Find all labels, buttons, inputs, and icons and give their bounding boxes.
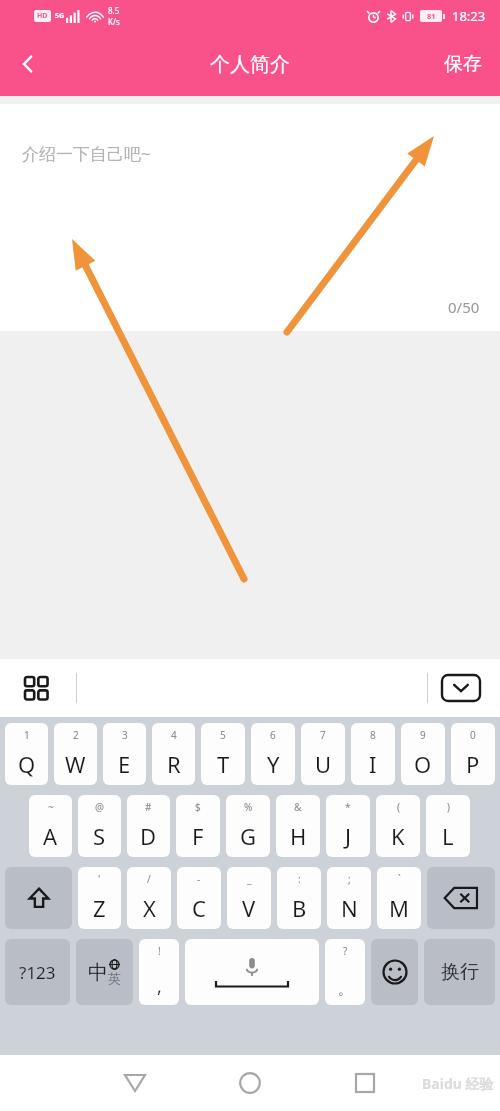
staticText: F xyxy=(192,821,204,851)
button[interactable]: 8 xyxy=(351,723,395,785)
staticText: 。 xyxy=(338,981,352,999)
button[interactable]: Keyboard panel xyxy=(14,666,58,710)
staticText: 4 xyxy=(171,728,177,742)
staticText: W xyxy=(65,749,86,779)
staticText: Baidu 经验 xyxy=(422,1074,494,1093)
button[interactable]: : xyxy=(277,867,321,929)
staticText: & xyxy=(294,800,302,814)
staticText: 7 xyxy=(320,728,326,742)
staticText: H xyxy=(290,821,307,851)
staticText: HD xyxy=(37,11,48,21)
button[interactable]: / xyxy=(127,867,171,929)
button[interactable]: 2 xyxy=(54,723,97,785)
button[interactable]: 7 xyxy=(301,723,345,785)
staticText: % xyxy=(244,800,253,814)
staticText: M xyxy=(389,893,409,923)
button[interactable] xyxy=(5,867,72,929)
button[interactable]: & xyxy=(276,795,320,857)
staticText: ( xyxy=(397,800,400,814)
button[interactable]: 1 xyxy=(5,723,48,785)
button[interactable]: ?123 xyxy=(5,939,70,1005)
staticText: Z xyxy=(93,893,106,923)
button[interactable]: 9 xyxy=(401,723,445,785)
staticText: 6 xyxy=(270,728,276,742)
staticText: A xyxy=(43,821,58,851)
staticText: 个人简介 xyxy=(210,52,290,77)
button[interactable]: $ xyxy=(176,795,220,857)
button[interactable]: 换行 xyxy=(424,939,495,1005)
staticText: 0/50 xyxy=(448,297,480,317)
staticText: 0 xyxy=(470,728,476,742)
staticText: G xyxy=(240,821,257,851)
staticText: Y xyxy=(267,749,280,779)
staticText: _ xyxy=(247,872,252,886)
staticText: 5G xyxy=(55,11,65,21)
staticText: 9 xyxy=(420,728,426,742)
staticText: 2 xyxy=(73,728,79,742)
button[interactable]: ` xyxy=(377,867,421,929)
button[interactable]: 保存 xyxy=(426,40,500,88)
button[interactable] xyxy=(371,939,418,1005)
button[interactable]: 3 xyxy=(103,723,146,785)
staticText: 英 xyxy=(108,970,121,986)
button[interactable]: * xyxy=(326,795,370,857)
staticText: B xyxy=(292,893,307,923)
staticText: 8 xyxy=(370,728,376,742)
staticText: 1 xyxy=(24,728,30,742)
button[interactable]: ~ xyxy=(29,795,72,857)
staticText: - xyxy=(197,872,201,886)
staticText: $ xyxy=(195,800,201,814)
button[interactable]: 6 xyxy=(251,723,295,785)
staticText: 18:23 xyxy=(452,7,486,25)
button[interactable] xyxy=(427,867,495,929)
staticText: 换行 xyxy=(441,960,479,984)
button[interactable]: 5 xyxy=(201,723,245,785)
staticText: ; xyxy=(348,872,351,886)
staticText: U xyxy=(315,749,332,779)
staticText: 保存 xyxy=(444,52,482,76)
button[interactable]: 0 xyxy=(451,723,495,785)
button[interactable]: Recents xyxy=(342,1060,388,1106)
staticText: T xyxy=(217,749,230,779)
button[interactable]: @ xyxy=(78,795,121,857)
staticText: 介绍一下自己吧~ xyxy=(22,142,151,165)
staticText: ? xyxy=(343,944,348,958)
staticText: : xyxy=(298,872,301,886)
button[interactable]: _ xyxy=(227,867,271,929)
button[interactable]: Back xyxy=(0,36,56,92)
button[interactable]: 4 xyxy=(152,723,195,785)
staticText: 81 xyxy=(427,11,436,21)
button[interactable]: ! xyxy=(139,939,179,1005)
staticText: E xyxy=(118,749,131,779)
staticText: ! xyxy=(158,944,161,958)
staticText: S xyxy=(93,821,106,851)
staticText: L xyxy=(442,821,454,851)
staticText: ' xyxy=(98,872,101,886)
button[interactable]: ( xyxy=(376,795,420,857)
button[interactable]: Space xyxy=(185,939,319,1005)
button[interactable]: Hide keyboard xyxy=(438,665,484,711)
button[interactable]: 中 xyxy=(76,939,133,1005)
staticText: ~ xyxy=(48,800,54,814)
button[interactable]: ? xyxy=(325,939,365,1005)
staticText: ?123 xyxy=(19,961,56,984)
button[interactable]: - xyxy=(177,867,221,929)
staticText: / xyxy=(147,872,151,886)
button[interactable]: ) xyxy=(426,795,470,857)
staticText: P xyxy=(466,749,480,779)
button[interactable]: Home xyxy=(227,1060,273,1106)
staticText: Q xyxy=(18,749,36,779)
button[interactable]: % xyxy=(226,795,270,857)
button[interactable]: # xyxy=(127,795,170,857)
staticText: 3 xyxy=(122,728,128,742)
staticText: N xyxy=(341,893,358,923)
staticText: R xyxy=(167,749,181,779)
staticText: 8.5 xyxy=(108,5,120,16)
staticText: , xyxy=(157,974,162,999)
staticText: K xyxy=(391,821,405,851)
staticText: J xyxy=(345,821,352,851)
button[interactable]: ; xyxy=(327,867,371,929)
staticText: O xyxy=(414,749,432,779)
button[interactable]: Back xyxy=(112,1060,158,1106)
button[interactable]: ' xyxy=(78,867,121,929)
